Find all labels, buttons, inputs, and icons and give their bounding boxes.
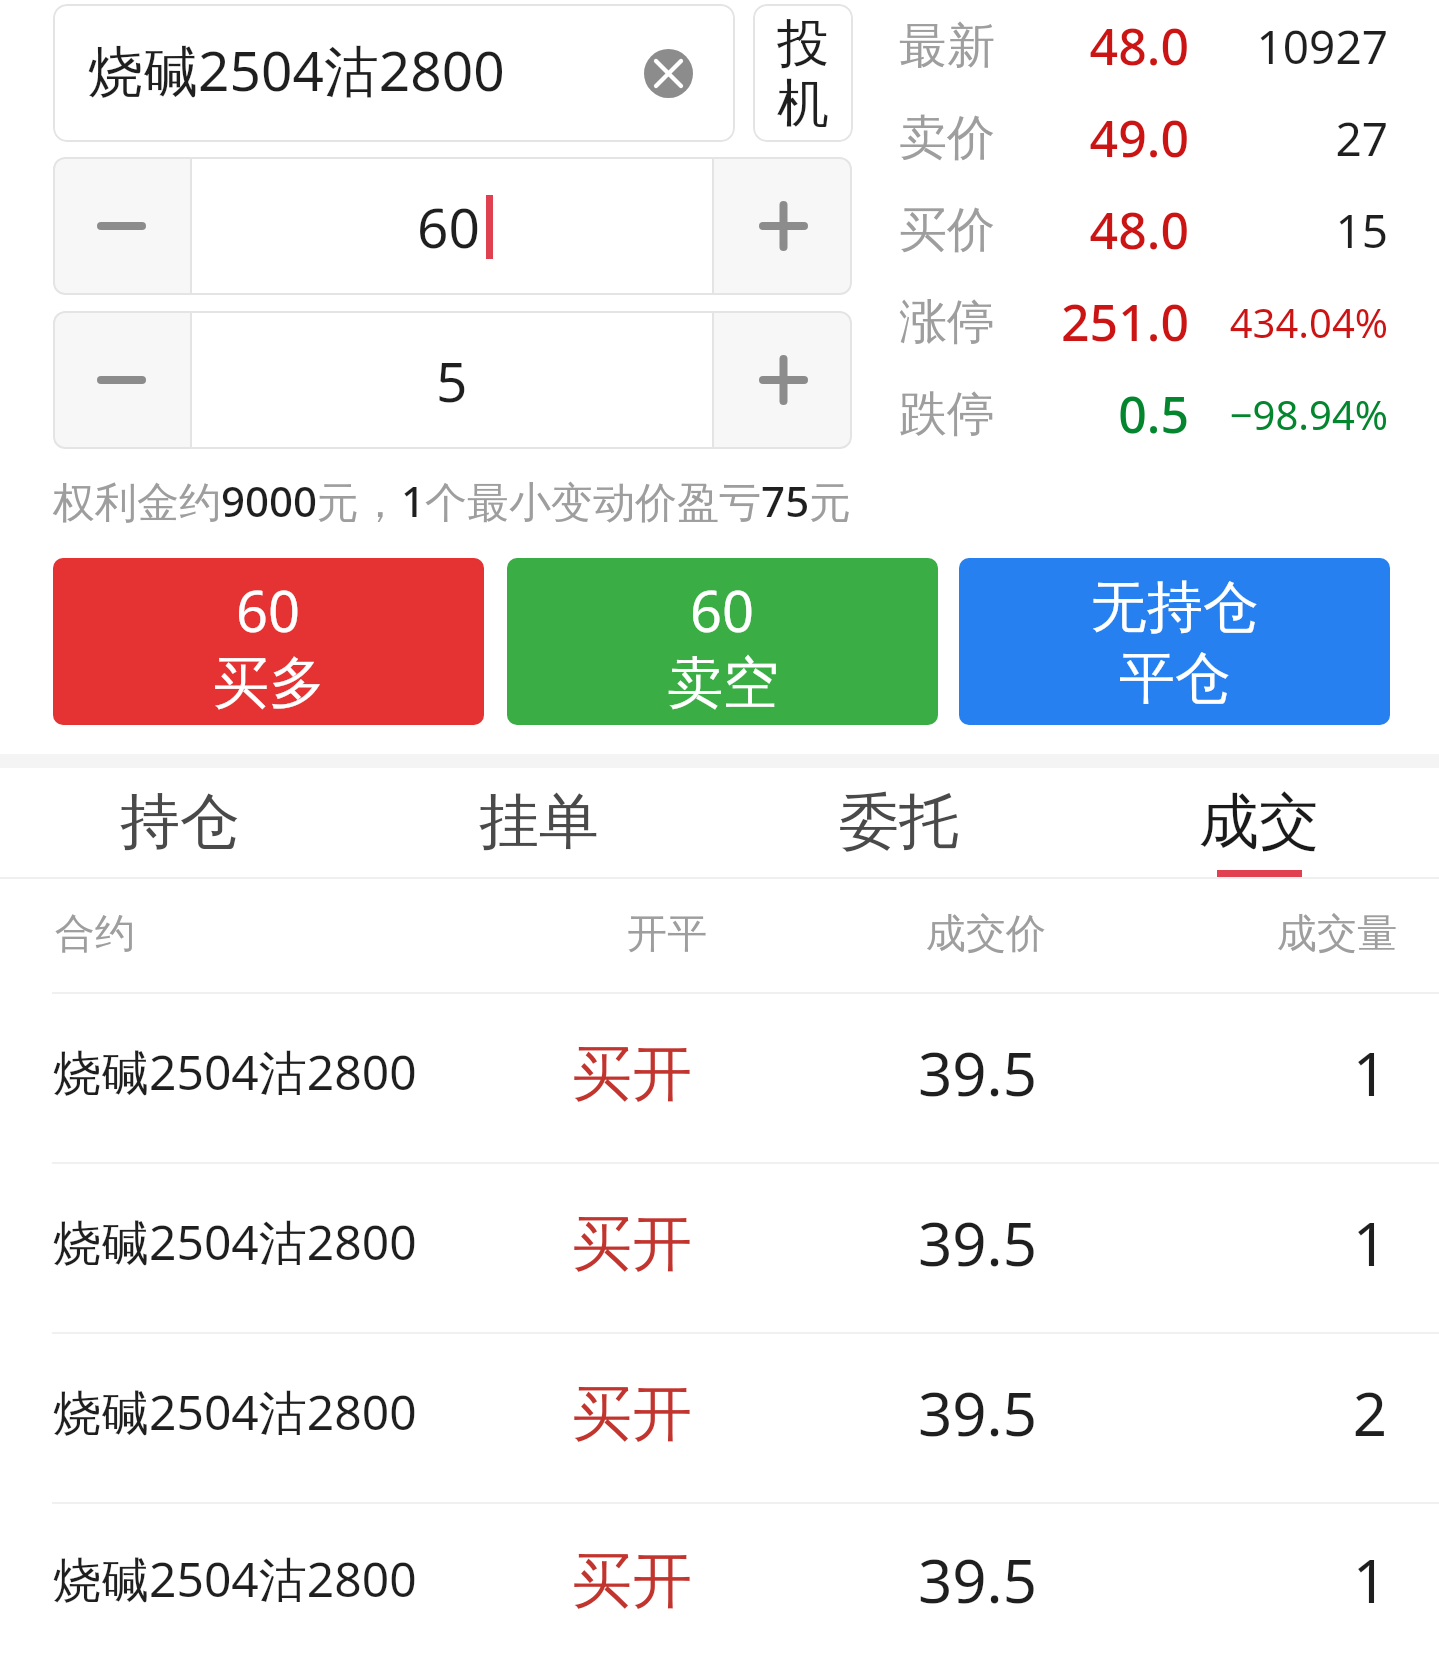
staticText: 卖空 (667, 648, 779, 719)
staticText: 买多 (213, 648, 325, 719)
staticText: 最新 (899, 16, 995, 76)
staticText: 无持仓 (1091, 572, 1259, 643)
staticText: 1 (1187, 1032, 1387, 1114)
staticText: 1 (1187, 1202, 1387, 1284)
button[interactable]: 烧碱2504沽2800 (0, 994, 1439, 1162)
staticText: 251.0 (880, 288, 1189, 356)
staticText: 48.0 (880, 12, 1189, 80)
staticText: −98.94% (1189, 387, 1388, 441)
button[interactable]: Clear contract (644, 49, 693, 98)
button[interactable]: Decrease (53, 157, 190, 295)
button[interactable]: 无持仓 (959, 558, 1390, 725)
button[interactable]: 涨停 (880, 276, 1439, 368)
staticText: 0.5 (880, 380, 1189, 448)
staticText: 开平 (627, 908, 707, 958)
button[interactable]: 卖价 (880, 92, 1439, 184)
staticText: 烧碱2504沽2800 (53, 1209, 417, 1275)
staticText: 买价 (899, 200, 995, 260)
staticText: 434.04% (1189, 295, 1388, 349)
button[interactable]: 烧碱2504沽2800 (0, 1334, 1439, 1502)
staticText: 投机 (775, 11, 831, 136)
staticText: 39.5 (800, 1032, 1037, 1114)
staticText: 合约 (55, 908, 135, 958)
staticText: 烧碱2504沽2800 (88, 32, 505, 107)
button[interactable]: 成交 (1079, 768, 1439, 879)
button[interactable]: 烧碱2504沽2800 (0, 1504, 1439, 1666)
button[interactable]: 60 (507, 558, 938, 725)
staticText: 权利金约9000元，1个最小变动价盈亏75元 (53, 472, 852, 529)
staticText: 48.0 (880, 196, 1189, 264)
button[interactable]: 持仓 (0, 768, 359, 879)
staticText: 烧碱2504沽2800 (53, 1546, 417, 1612)
staticText: 买开 (572, 1206, 692, 1282)
button[interactable]: 烧碱2504沽2800 (0, 1164, 1439, 1332)
staticText: 成交量 (1277, 908, 1397, 958)
staticText: 60 (690, 572, 755, 648)
button[interactable]: 60 (192, 157, 712, 295)
staticText: 烧碱2504沽2800 (53, 1379, 417, 1445)
button[interactable]: 买价 (880, 184, 1439, 276)
staticText: 60 (417, 189, 480, 264)
button[interactable]: 挂单 (359, 768, 719, 879)
staticText: 60 (236, 572, 301, 648)
staticText: 委托 (839, 784, 959, 860)
button[interactable]: 跌停 (880, 368, 1439, 460)
staticText: 5 (436, 343, 468, 418)
staticText: 买开 (572, 1036, 692, 1112)
staticText: 成交 (1199, 784, 1319, 860)
button[interactable]: Decrease (53, 311, 190, 449)
button[interactable]: Increase (714, 311, 852, 449)
staticText: 买开 (572, 1543, 692, 1619)
staticText: 烧碱2504沽2800 (53, 1039, 417, 1105)
staticText: 卖价 (899, 108, 995, 168)
staticText: 15 (1189, 199, 1388, 262)
staticText: 持仓 (120, 784, 240, 860)
staticText: 39.5 (800, 1202, 1037, 1284)
button[interactable]: 投机 (753, 4, 853, 142)
button[interactable]: 60 (53, 558, 484, 725)
staticText: 平仓 (1119, 643, 1231, 714)
staticText: 挂单 (479, 784, 599, 860)
staticText: 成交价 (926, 908, 1046, 958)
button[interactable]: Increase (714, 157, 852, 295)
staticText: 10927 (1189, 15, 1388, 78)
staticText: 27 (1189, 107, 1388, 170)
staticText: 买开 (572, 1376, 692, 1452)
button[interactable]: 最新 (880, 0, 1439, 92)
staticText: 涨停 (899, 292, 995, 352)
staticText: 2 (1187, 1372, 1387, 1454)
button[interactable]: 烧碱2504沽2800 (53, 4, 735, 142)
staticText: 1 (1187, 1539, 1387, 1621)
staticText: 39.5 (800, 1372, 1037, 1454)
button[interactable]: 5 (192, 311, 712, 449)
staticText: 49.0 (880, 104, 1189, 172)
button[interactable]: 委托 (719, 768, 1079, 879)
staticText: 跌停 (899, 384, 995, 444)
staticText: 39.5 (800, 1539, 1037, 1621)
